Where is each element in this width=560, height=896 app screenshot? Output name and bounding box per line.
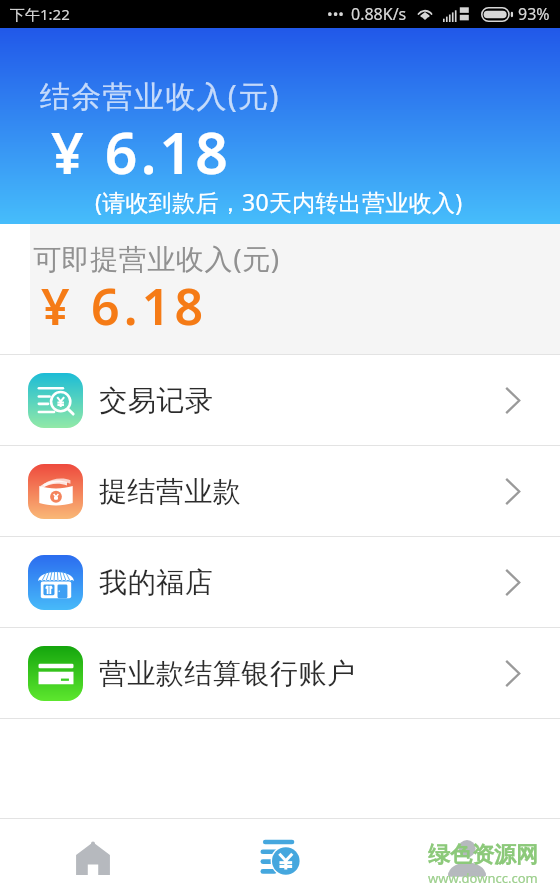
staticText: 营业款结算银行账户 — [99, 656, 356, 691]
staticText: ••• — [327, 4, 344, 24]
staticText: 93% — [518, 3, 550, 25]
staticText: 交易记录 — [99, 383, 213, 418]
staticText: ¥ 6.18 — [41, 272, 208, 340]
staticText: 可即提营业收入(元) — [33, 239, 280, 277]
staticText: 结余营业收入(元) — [40, 75, 280, 116]
staticText: 绿色资源网 — [428, 841, 538, 869]
staticText: www.downcc.com — [428, 869, 538, 887]
staticText: 我的福店 — [99, 565, 213, 600]
staticText: 下午1:22 — [10, 4, 70, 24]
staticText: (请收到款后，30天内转出营业收入) — [95, 186, 463, 217]
staticText: 提结营业款 — [99, 474, 242, 509]
button[interactable]: 营业款结算银行账户 — [0, 628, 560, 718]
staticText: ¥ 6.18 — [51, 113, 232, 191]
staticText: 0.88K/s — [351, 3, 407, 25]
button[interactable]: Profile — [373, 819, 560, 896]
button[interactable]: Finance — [186, 819, 373, 896]
button[interactable]: 提结营业款 — [0, 446, 560, 536]
button[interactable]: 我的福店 — [0, 537, 560, 627]
button[interactable]: Home — [0, 819, 186, 896]
button[interactable]: 交易记录 — [0, 355, 560, 445]
